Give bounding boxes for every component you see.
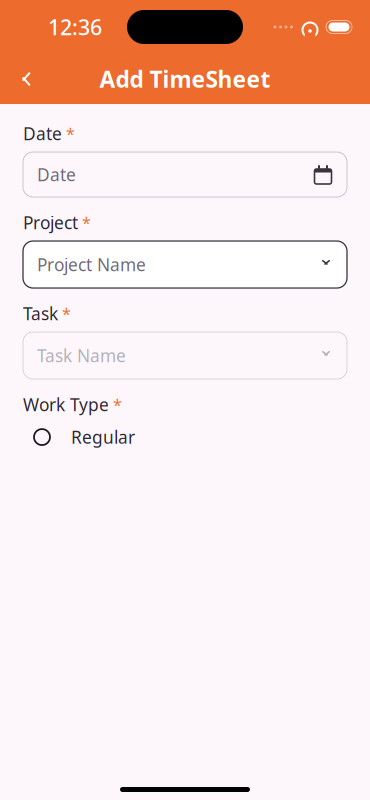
button[interactable]: Regular xyxy=(23,422,347,452)
button[interactable]: Date xyxy=(23,152,347,197)
staticText: Task Name xyxy=(37,344,126,367)
staticText: * xyxy=(113,394,122,415)
staticText: Date xyxy=(37,163,76,186)
staticText: Add TimeSheet xyxy=(99,64,270,94)
staticText: * xyxy=(66,123,75,144)
staticText: * xyxy=(82,212,91,233)
staticText: Project Name xyxy=(37,253,146,276)
staticText: Task xyxy=(23,302,58,325)
button[interactable]: Task Name xyxy=(23,332,347,379)
staticText: * xyxy=(62,303,71,324)
staticText: Project xyxy=(23,211,78,234)
staticText: Regular xyxy=(71,426,135,449)
button[interactable]: Back xyxy=(12,62,46,96)
staticText: Date xyxy=(23,122,62,145)
staticText: 12:36 xyxy=(48,13,102,41)
staticText: Work Type xyxy=(23,393,109,416)
button[interactable]: Project Name xyxy=(23,241,347,288)
